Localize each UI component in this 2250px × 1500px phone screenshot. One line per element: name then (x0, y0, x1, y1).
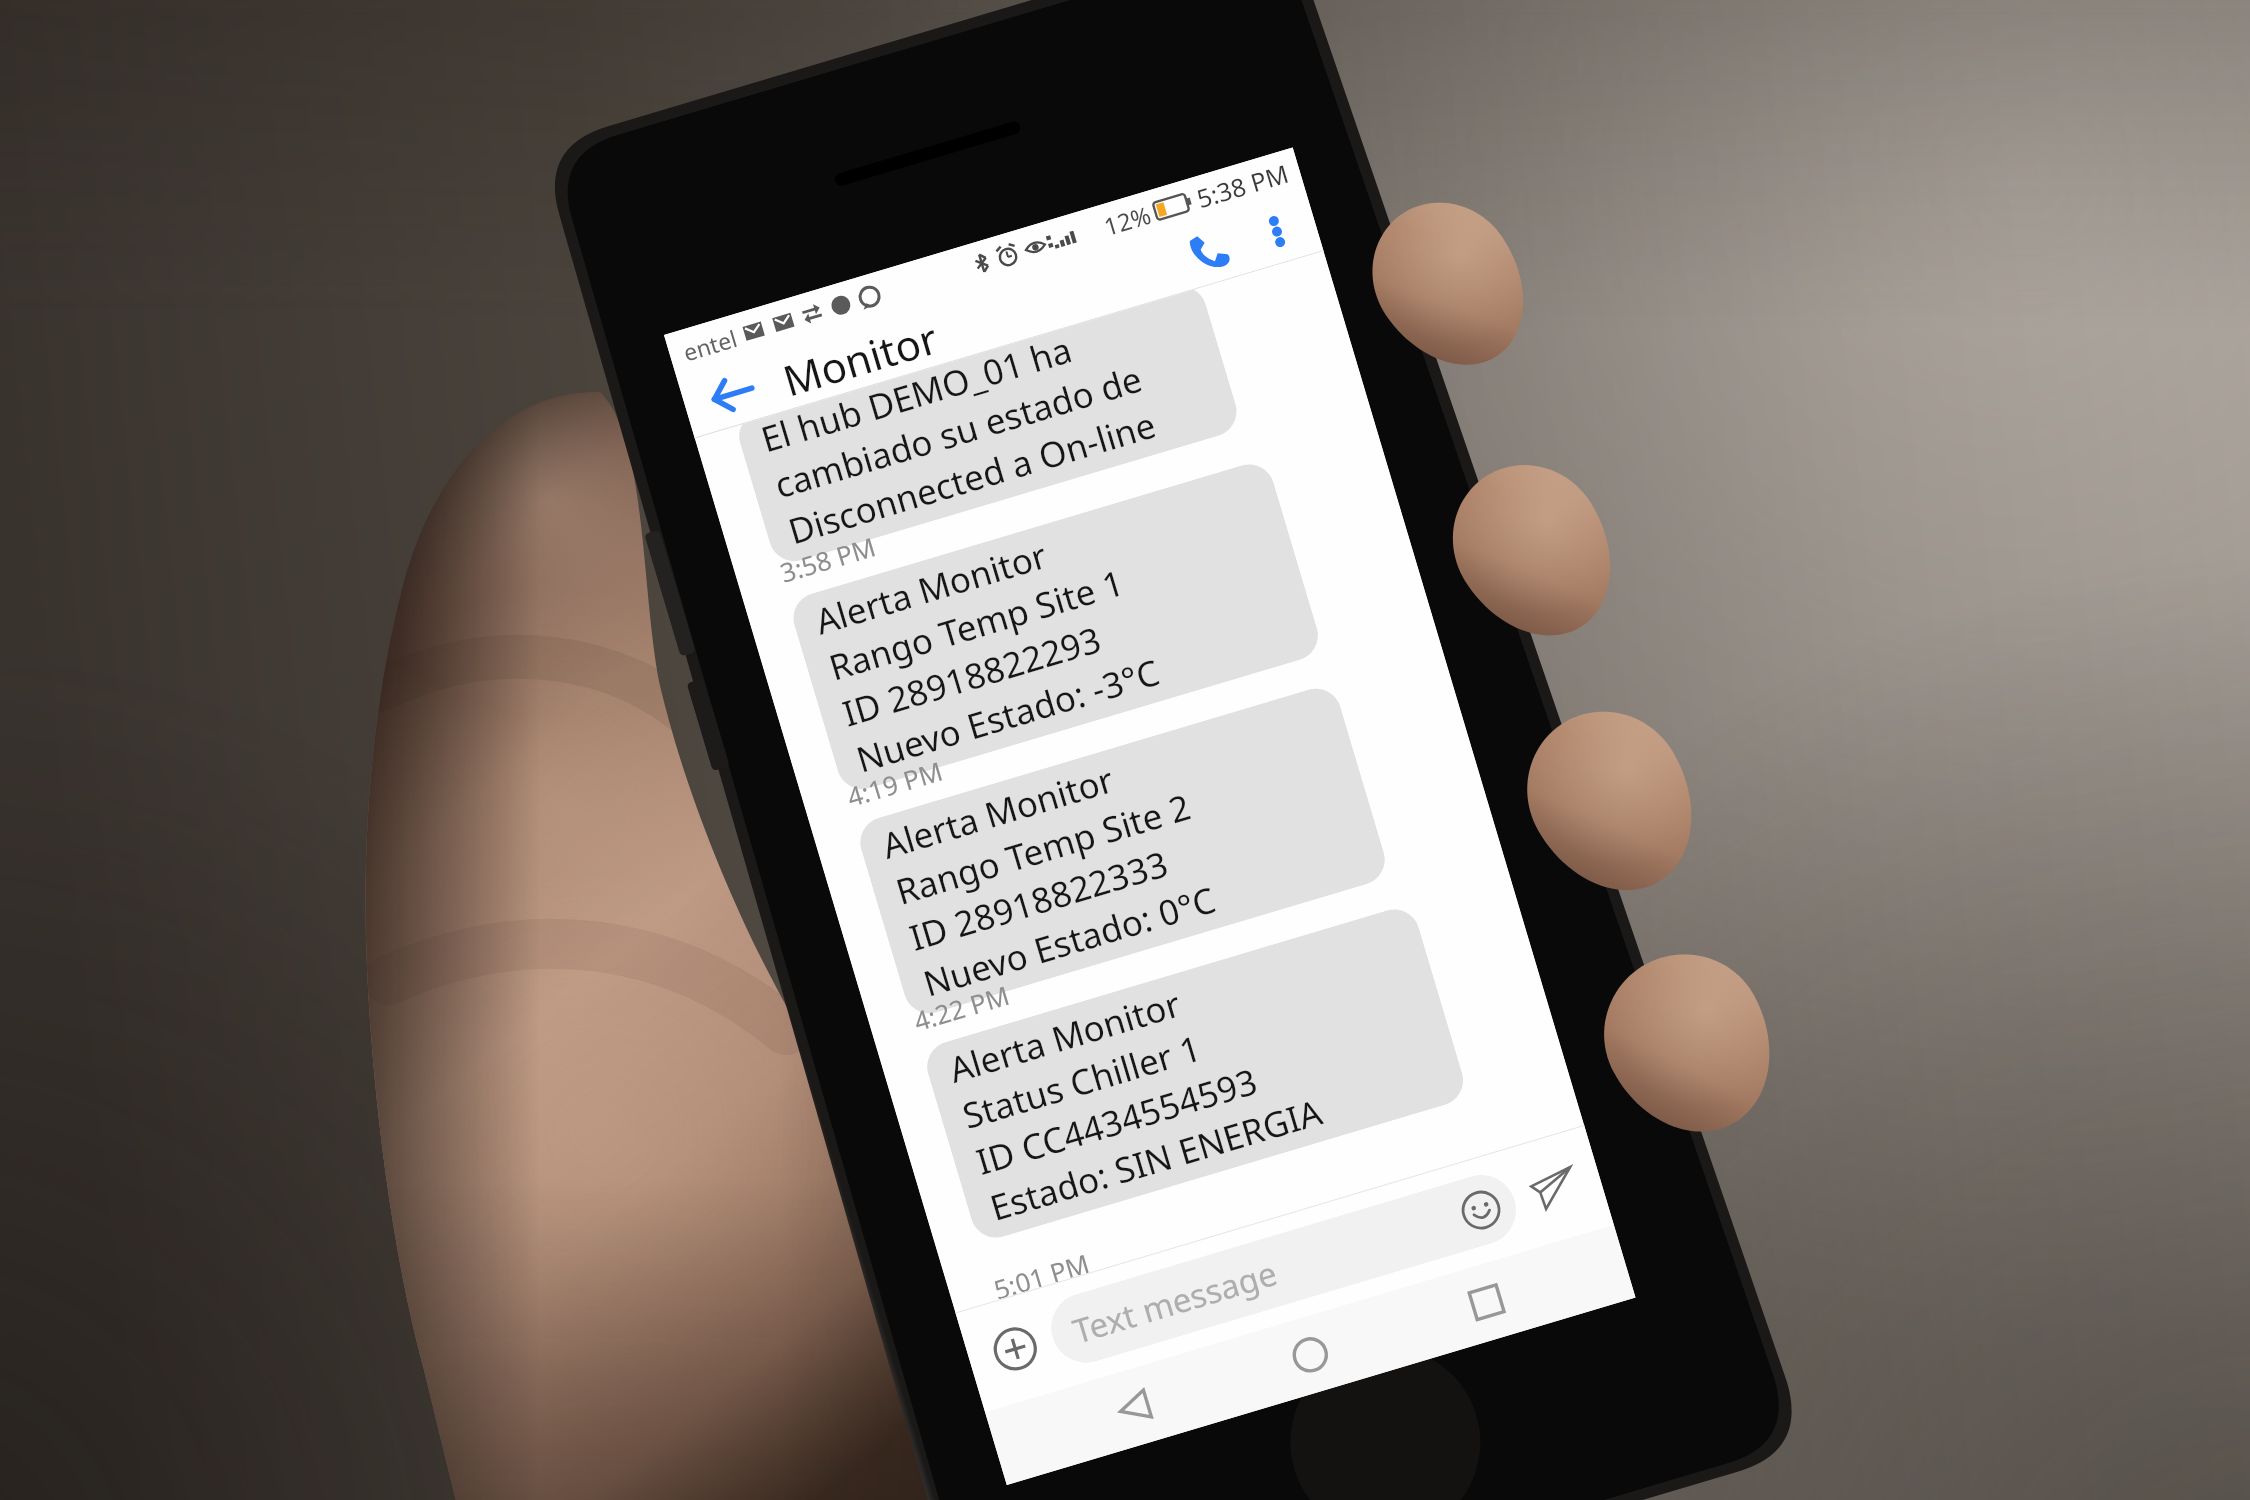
button[interactable]: Alerta Monitor (854, 682, 1391, 1020)
staticText: cambiado su estado de (769, 354, 1148, 509)
button[interactable]: El hub DEMO_01 ha (735, 288, 1243, 567)
staticText: Nuevo Estado: -3°C (851, 648, 1165, 783)
staticText: 5:01 PM (990, 1245, 1091, 1300)
staticText: Disconnected a On-line (783, 400, 1162, 555)
staticText: Monitor (776, 308, 943, 404)
staticText: Text message (1067, 1250, 1283, 1353)
button[interactable]: Recent apps (1438, 1255, 1535, 1350)
staticText: 3:58 PM (776, 528, 880, 590)
staticText: Nuevo Estado: 0°C (918, 875, 1222, 1008)
button[interactable]: Back (1087, 1360, 1183, 1455)
button[interactable]: Emoji (1452, 1181, 1510, 1239)
button[interactable]: Call (1172, 214, 1246, 289)
button[interactable]: Alerta Monitor (921, 903, 1469, 1244)
staticText: Estado: SIN ENERGIA (984, 1088, 1328, 1232)
staticText: ID CC4434554593 (971, 1057, 1263, 1186)
staticText: ID 28918822293 (837, 615, 1107, 737)
staticText: Rango Temp Site 1 (823, 558, 1129, 691)
staticText: 12% (1100, 198, 1155, 243)
staticText: Rango Temp Site 2 (890, 782, 1196, 916)
staticText: Alerta Monitor (876, 755, 1119, 870)
staticText: Status Chiller 1 (957, 1024, 1206, 1140)
button[interactable]: More options (1246, 200, 1308, 263)
button[interactable]: Add attachment (979, 1313, 1051, 1385)
button[interactable]: Home (1262, 1307, 1359, 1402)
button[interactable]: Back (692, 354, 773, 434)
staticText: El hub DEMO_01 ha (756, 328, 1078, 463)
staticText: 4:22 PM (910, 977, 1013, 1038)
staticText: Alerta Monitor (810, 531, 1052, 645)
button[interactable]: Alerta Monitor (787, 458, 1324, 795)
staticText: 5:38 PM (1192, 156, 1292, 215)
staticText: Alerta Monitor (943, 980, 1186, 1094)
button[interactable]: Text message (1043, 1166, 1525, 1371)
button[interactable]: Monitor (774, 303, 945, 409)
staticText: entel (679, 322, 741, 367)
button[interactable]: Send (1518, 1152, 1590, 1224)
staticText: ID 28918822333 (904, 839, 1173, 962)
staticText: 4:19 PM (843, 752, 947, 814)
